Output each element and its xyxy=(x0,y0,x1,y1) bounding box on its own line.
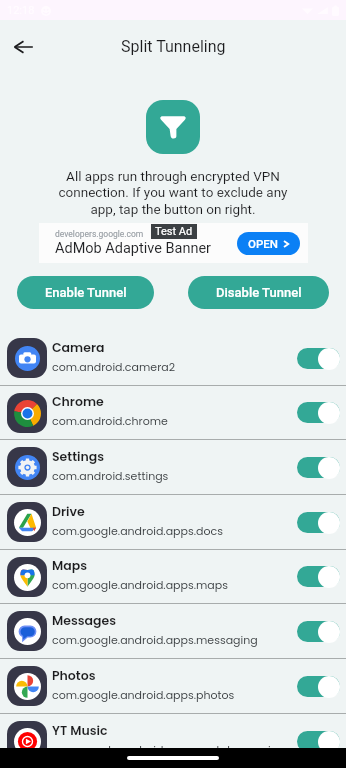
button[interactable]: Toggle app xyxy=(297,456,340,479)
button[interactable]: Toggle app xyxy=(297,620,340,643)
button[interactable]: YT Music xyxy=(0,714,346,768)
staticText: com.google.android.apps.maps xyxy=(52,577,228,592)
staticText: Messages xyxy=(52,612,117,629)
button[interactable]: Toggle app xyxy=(297,401,340,424)
staticText: com.android.chrome xyxy=(52,413,168,428)
staticText: com.google.android.apps.photos xyxy=(52,687,235,702)
button[interactable]: Settings xyxy=(0,440,346,494)
staticText: Drive xyxy=(52,503,85,520)
button[interactable]: Toggle app xyxy=(297,730,340,753)
button[interactable]: OPEN xyxy=(237,232,300,255)
staticText: com.google.android.apps.docs xyxy=(52,523,223,538)
staticText: Maps xyxy=(52,557,88,574)
staticText: Disable Tunnel xyxy=(216,285,302,300)
button[interactable]: Toggle app xyxy=(297,565,340,588)
button[interactable]: Drive xyxy=(0,495,346,549)
staticText: AdMob Adaptive Banner xyxy=(55,240,211,257)
button[interactable]: Toggle app xyxy=(297,675,340,698)
staticText: com.android.settings xyxy=(52,468,169,483)
button[interactable]: Toggle app xyxy=(297,511,340,534)
staticText: com.google.android.apps.youtube.music xyxy=(52,742,278,757)
staticText: developers.google.com xyxy=(55,229,144,239)
button[interactable]: Maps xyxy=(0,550,346,603)
staticText: OPEN xyxy=(248,237,278,250)
staticText: Test Ad xyxy=(155,225,193,238)
staticText: All apps run through encrypted VPN conne… xyxy=(52,168,294,218)
staticText: Split Tunneling xyxy=(121,37,226,56)
staticText: Settings xyxy=(52,448,105,465)
button[interactable]: Toggle app xyxy=(297,347,340,370)
button[interactable]: Messages xyxy=(0,604,346,658)
staticText: YT Music xyxy=(52,722,108,739)
staticText: com.android.camera2 xyxy=(52,359,175,374)
staticText: Enable Tunnel xyxy=(45,285,127,300)
button[interactable]: Enable Tunnel xyxy=(17,276,154,309)
staticText: Photos xyxy=(52,667,96,684)
button[interactable]: Back xyxy=(6,29,41,64)
button[interactable]: Photos xyxy=(0,659,346,713)
button[interactable]: Camera xyxy=(0,331,346,385)
staticText: Chrome xyxy=(52,393,104,410)
button[interactable]: Chrome xyxy=(0,386,346,439)
staticText: com.google.android.apps.messaging xyxy=(52,632,258,647)
button[interactable]: Disable Tunnel xyxy=(188,276,329,309)
staticText: Camera xyxy=(52,339,105,356)
